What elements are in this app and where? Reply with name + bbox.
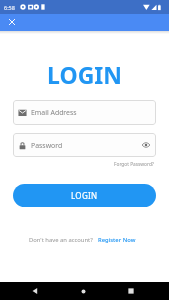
- button[interactable]: Email Address: [13, 100, 156, 125]
- button[interactable]: Home: [75, 283, 91, 299]
- button[interactable]: LOGIN: [13, 184, 156, 207]
- staticText: LOGIN: [71, 190, 98, 201]
- staticText: LOGIN: [0, 59, 169, 90]
- button[interactable]: Recents: [123, 283, 139, 299]
- button[interactable]: Forgot Password?: [113, 160, 155, 169]
- button[interactable]: Register Now: [98, 236, 136, 244]
- other: Show password: [142, 141, 150, 149]
- button[interactable]: Password: [13, 133, 156, 157]
- button[interactable]: Back: [27, 283, 43, 299]
- staticText: Don't have an account?: [29, 236, 93, 244]
- staticText: Email Address: [31, 108, 77, 117]
- staticText: 6:58: [4, 4, 15, 11]
- staticText: Password: [31, 141, 63, 150]
- button[interactable]: Close: [5, 15, 19, 29]
